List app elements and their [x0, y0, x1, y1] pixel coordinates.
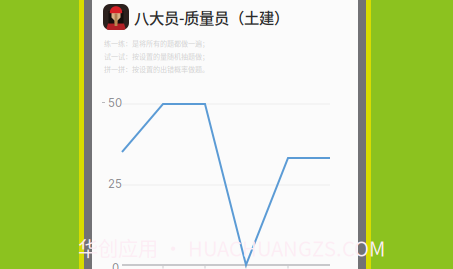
staticText: 25: [108, 177, 122, 191]
staticText: 0: [112, 261, 119, 269]
staticText: 50: [108, 96, 122, 110]
button[interactable]: 八大员-质量员（土建）: [103, 4, 289, 30]
staticText: 华创应用 · HUACHUANGZS.COM: [78, 233, 385, 262]
staticText: 八大员-质量员（土建）: [134, 6, 289, 28]
staticText: 练一练：是将所有的题都做一遍；: [104, 38, 209, 48]
staticText: 试一试：按设置的量随机抽题做；: [104, 51, 209, 61]
staticText: 拼一拼：按设置的出错概率做题。: [104, 64, 209, 74]
